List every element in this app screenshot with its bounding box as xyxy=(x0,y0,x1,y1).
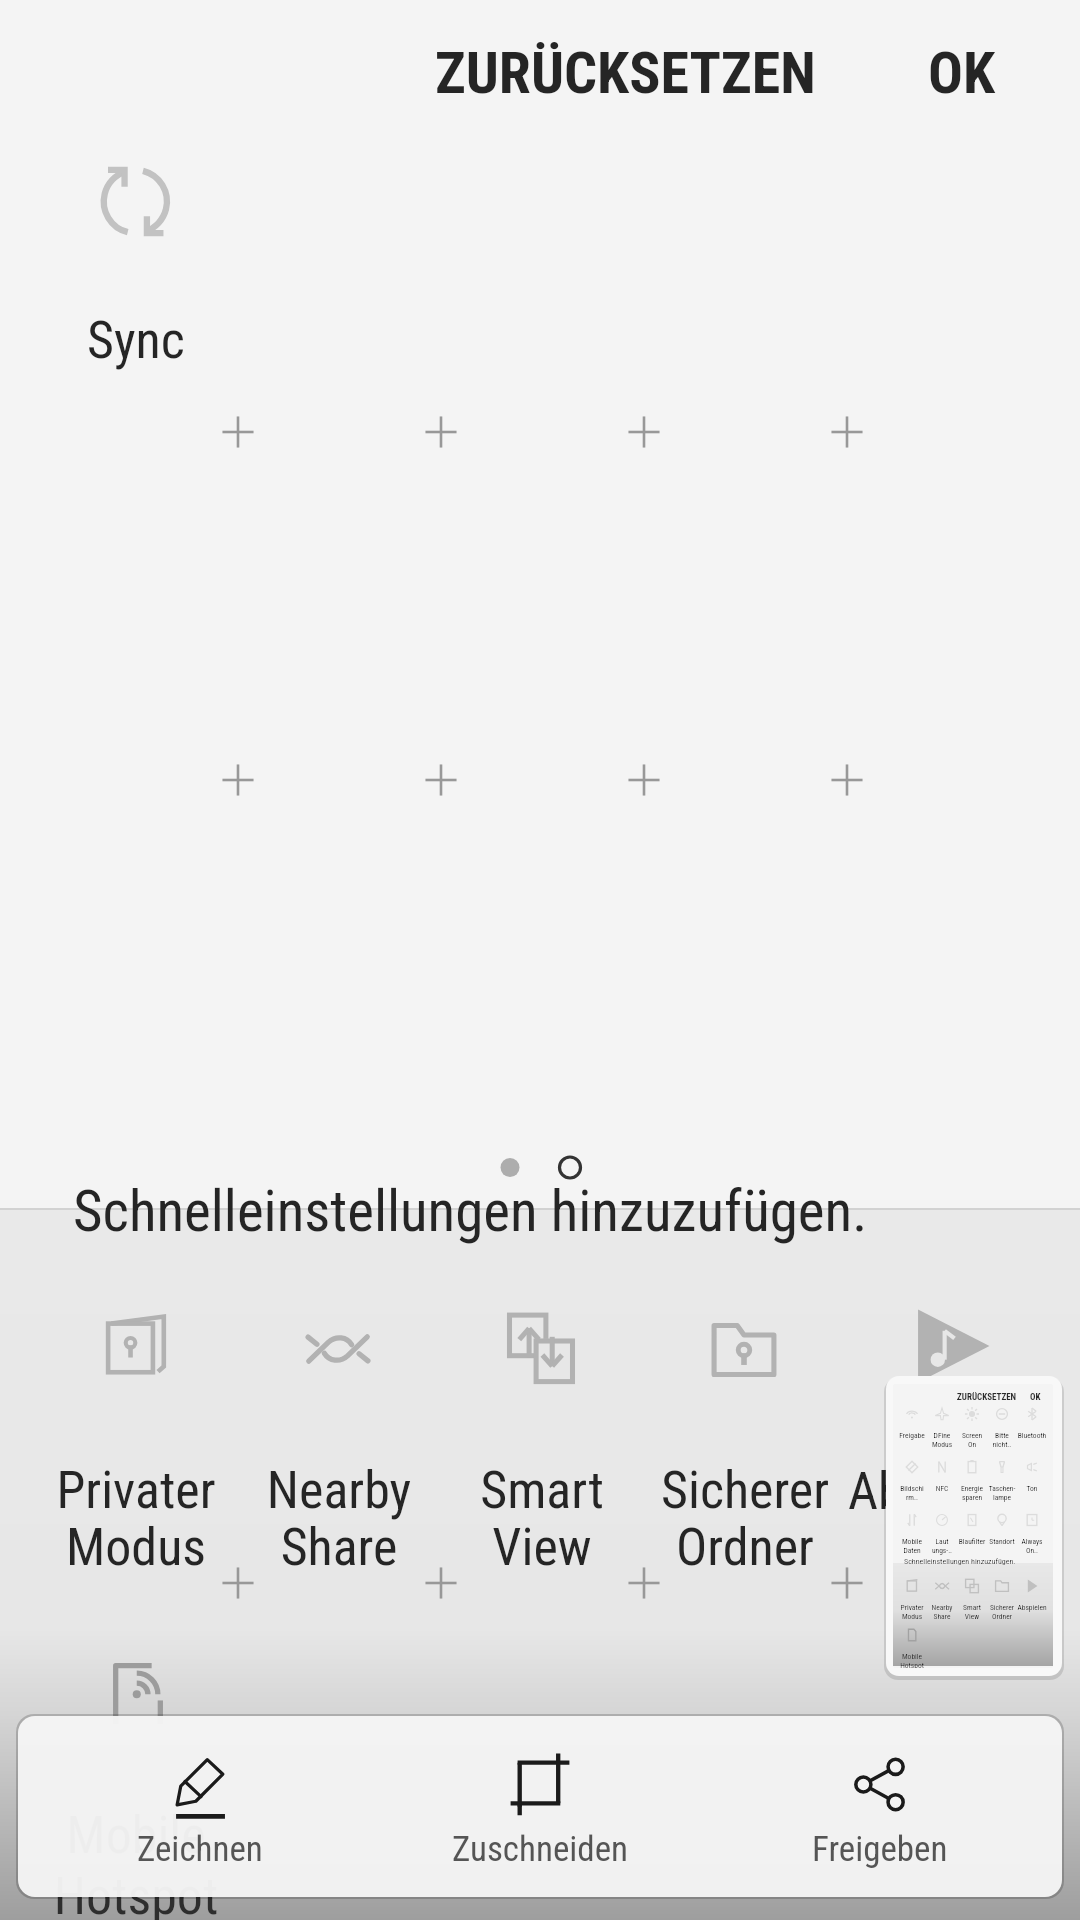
staticText: Mobile Hotspot xyxy=(894,1652,930,1668)
button[interactable]: Add quick setting xyxy=(623,1562,665,1604)
staticText: Ab xyxy=(848,1461,904,1522)
button[interactable]: Zeichnen xyxy=(50,1716,350,1897)
button[interactable]: Sync xyxy=(56,150,216,390)
staticText: Schnelleinstellungen hinzuzufügen. xyxy=(73,1178,868,1245)
button[interactable]: Add quick setting xyxy=(623,411,665,453)
staticText: ZURÜCKSETZEN xyxy=(435,39,816,107)
button[interactable]: Add quick setting xyxy=(217,759,259,801)
staticText: Sicherer Ordner xyxy=(984,1603,1020,1621)
staticText: Taschen- lampe xyxy=(984,1484,1020,1502)
staticText: Bitte nicht.. xyxy=(984,1431,1020,1449)
button[interactable]: Add quick setting xyxy=(826,759,868,801)
button[interactable]: Add quick setting xyxy=(420,1562,462,1604)
staticText: NFC xyxy=(924,1484,960,1493)
button[interactable]: OK xyxy=(896,29,1027,117)
button[interactable]: Privater Modus xyxy=(6,1460,266,1578)
staticText: Bildschi rm.. xyxy=(894,1484,930,1502)
staticText: Zuschneiden xyxy=(452,1829,629,1870)
staticText: Screen On xyxy=(954,1431,990,1449)
staticText: OK xyxy=(1030,1392,1041,1403)
staticText: ZURÜCKSETZEN xyxy=(957,1392,1017,1403)
button[interactable]: Add quick setting xyxy=(826,1562,868,1604)
button[interactable]: Nearby Share xyxy=(209,1460,469,1578)
button[interactable]: Add quick setting xyxy=(420,411,462,453)
staticText: Privater Modus xyxy=(894,1603,930,1621)
button[interactable]: Add quick setting xyxy=(826,411,868,453)
staticText: Zeichnen xyxy=(137,1829,263,1870)
button[interactable]: Sicherer Ordner xyxy=(615,1460,875,1578)
staticText: Sync xyxy=(87,310,185,371)
button[interactable]: Add quick setting xyxy=(217,1562,259,1604)
staticText: Freigabe xyxy=(894,1431,930,1440)
staticText: Standort xyxy=(984,1537,1020,1546)
staticText: Mobile Hotspot xyxy=(6,1805,266,1920)
staticText: Nearby Share xyxy=(924,1603,960,1621)
staticText: Smart View xyxy=(412,1460,672,1578)
staticText: Smart View xyxy=(954,1603,990,1621)
staticText: OK xyxy=(928,39,996,107)
button[interactable]: Add quick setting xyxy=(623,759,665,801)
button[interactable]: ZURÜCKSETZEN xyxy=(420,29,830,117)
staticText: Laut ungs-.. xyxy=(924,1537,960,1555)
staticText: Bluetooth xyxy=(1014,1431,1050,1440)
button[interactable]: Zuschneiden xyxy=(390,1716,690,1897)
button[interactable]: Add quick setting xyxy=(420,759,462,801)
staticText: Mobile Daten xyxy=(894,1537,930,1555)
staticText: Schnelleinstellungen hinzuzufügen. xyxy=(904,1557,1016,1566)
staticText: Energie sparen xyxy=(954,1484,990,1502)
staticText: Blaufilter xyxy=(954,1537,990,1546)
staticText: Always On.. xyxy=(1014,1537,1050,1555)
staticText: Sicherer Ordner xyxy=(615,1460,875,1578)
staticText: Privater Modus xyxy=(6,1460,266,1578)
button[interactable]: Add quick setting xyxy=(217,411,259,453)
staticText: Ton xyxy=(1014,1484,1050,1493)
button[interactable]: Smart View xyxy=(412,1460,672,1578)
staticText: DFine Modus xyxy=(924,1431,960,1449)
staticText: Freigeben xyxy=(812,1829,948,1870)
button[interactable]: Freigeben xyxy=(730,1716,1030,1897)
button[interactable]: Screenshot preview xyxy=(886,1376,1062,1676)
staticText: Abspielen xyxy=(1014,1603,1050,1612)
staticText: Nearby Share xyxy=(209,1460,469,1578)
